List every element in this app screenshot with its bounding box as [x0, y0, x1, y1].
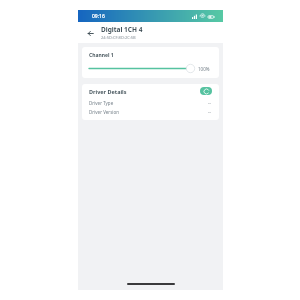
- staticText: Channel 1: [89, 52, 114, 59]
- staticText: 24:5D:CF:8D:2C:5B: [101, 35, 136, 40]
- button[interactable]: Back: [83, 26, 97, 40]
- staticText: --: [208, 100, 211, 106]
- staticText: 09:16: [92, 13, 105, 20]
- staticText: Driver Details: [89, 88, 127, 95]
- button[interactable]: Driver Type: [89, 98, 212, 107]
- staticText: Driver Type: [89, 100, 114, 106]
- button[interactable]: Refresh driver details: [200, 87, 212, 95]
- button[interactable]: Channel 1: [82, 47, 219, 78]
- staticText: Driver Version: [89, 109, 119, 115]
- staticText: --: [208, 109, 211, 115]
- staticText: 100%: [198, 66, 212, 72]
- button[interactable]: Driver Version: [89, 107, 212, 116]
- staticText: Digital 1CH 4: [101, 25, 143, 34]
